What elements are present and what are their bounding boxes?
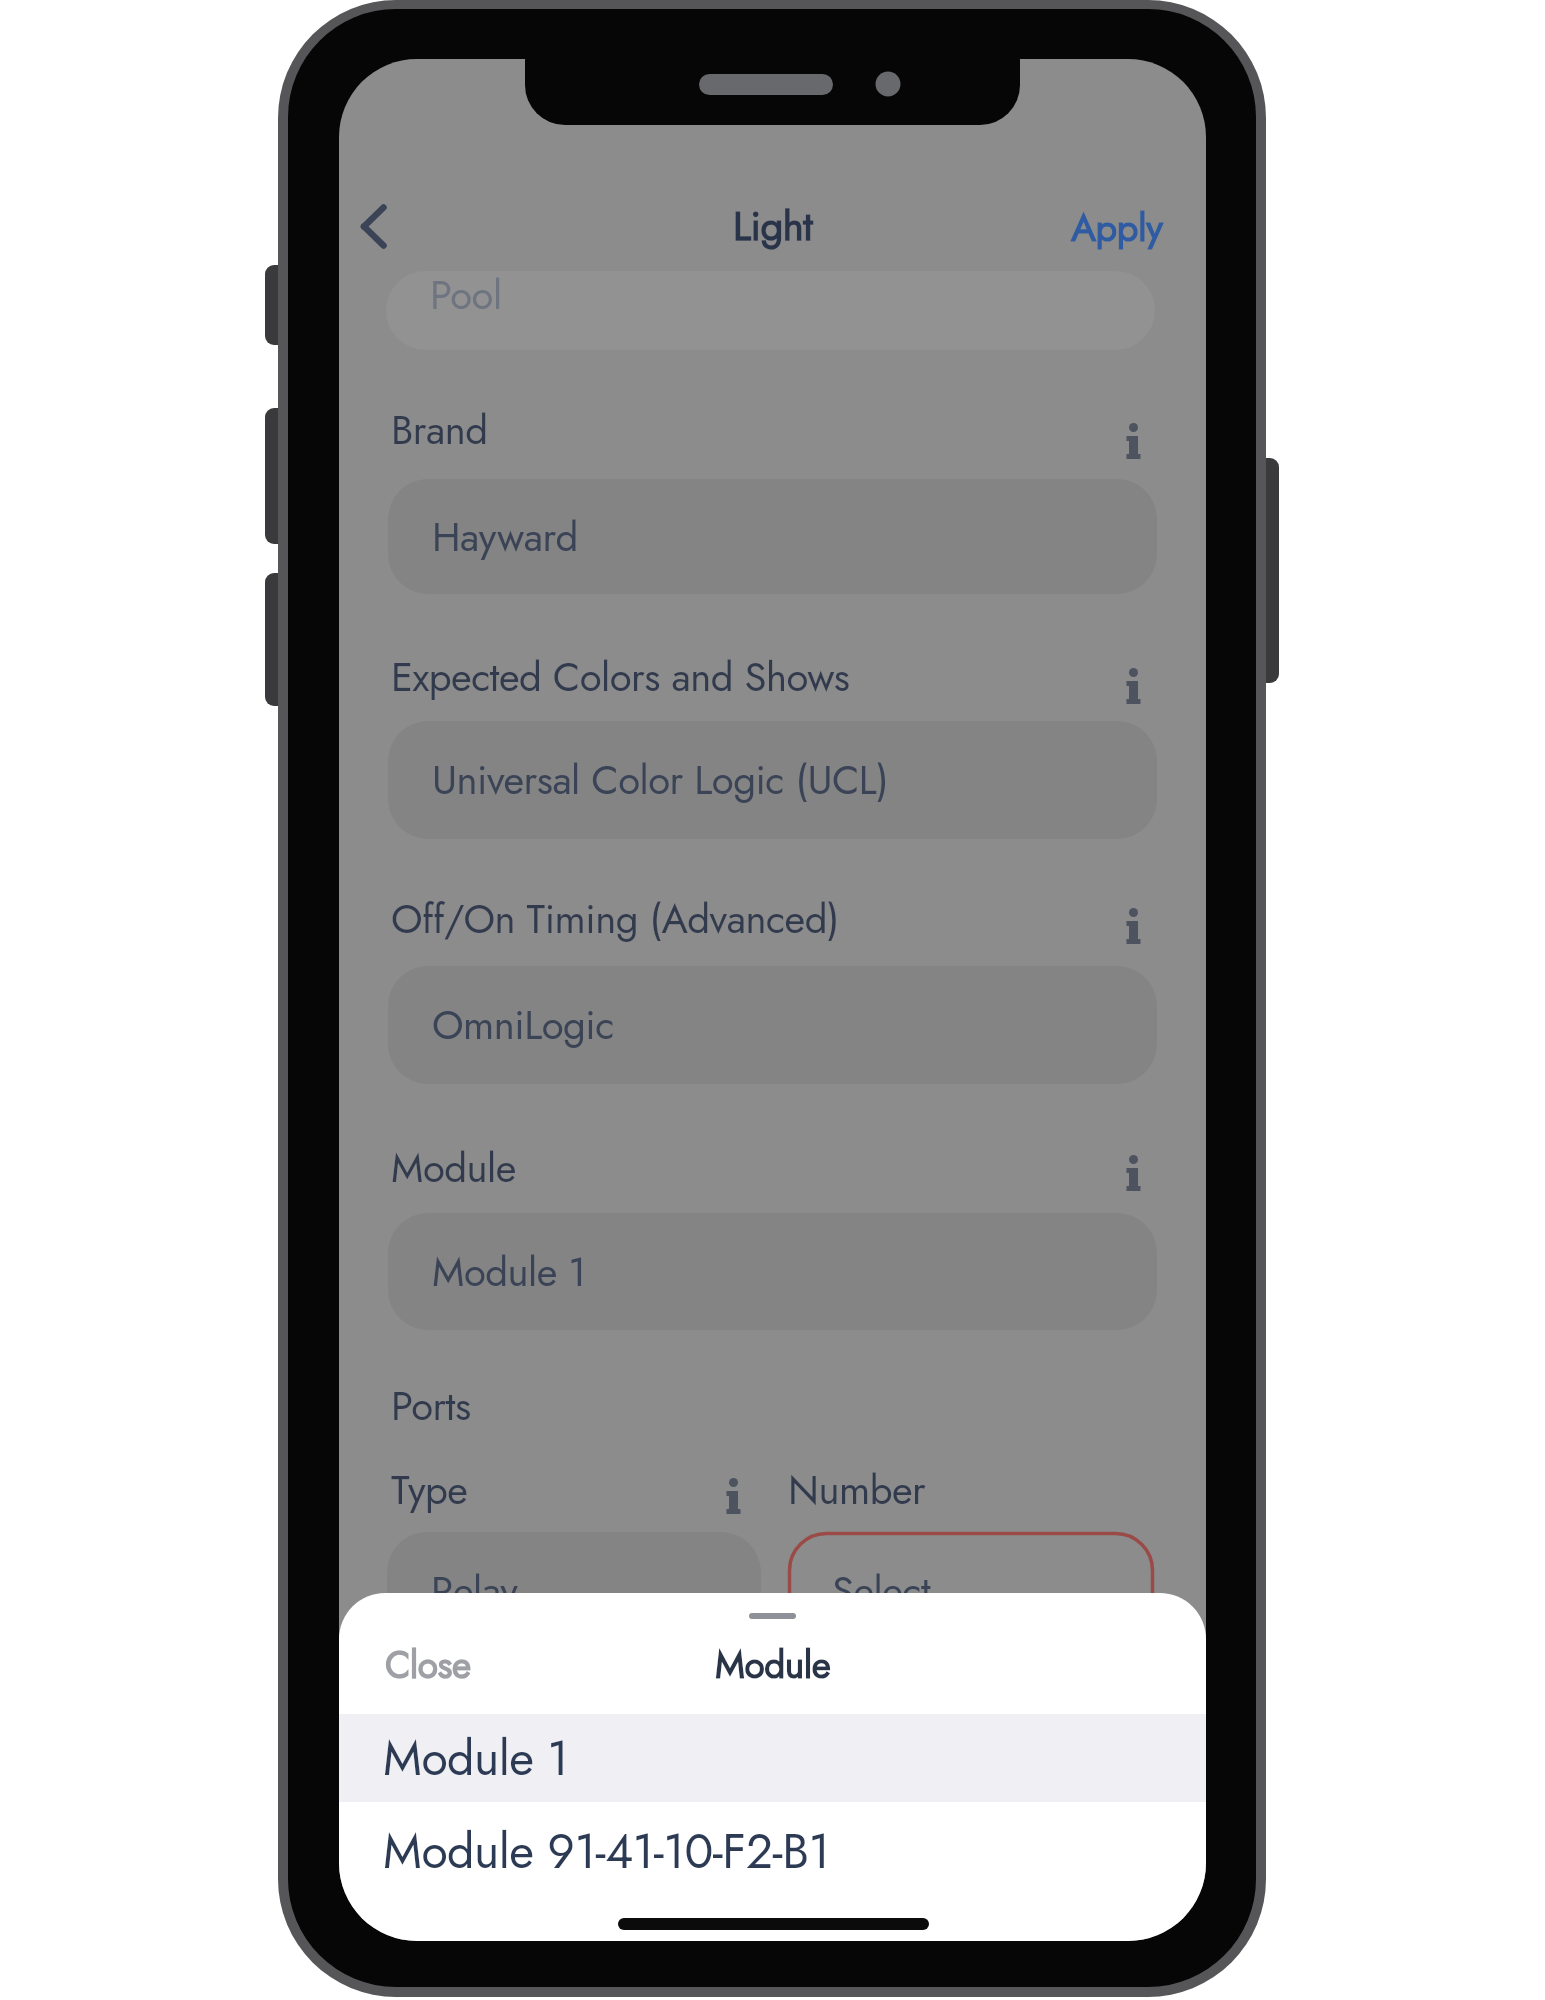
button[interactable]: Relay: [387, 1532, 761, 1650]
staticText: Hayward: [432, 508, 578, 566]
button[interactable]: Module 91-41-10-F2-B1: [339, 1802, 1206, 1900]
staticText: Universal Color Logic (UCL): [432, 751, 889, 809]
staticText: Apply: [1071, 200, 1163, 255]
staticText: Type: [391, 1461, 468, 1519]
staticText: Module: [715, 1638, 831, 1691]
staticText: Pool: [430, 266, 502, 324]
staticText: Module 91-41-10-F2-B1: [383, 1817, 830, 1886]
staticText: Close: [385, 1638, 471, 1691]
staticText: Module 1: [383, 1724, 569, 1793]
button[interactable]: Hayward: [388, 479, 1157, 594]
button[interactable]: Select: [788, 1532, 1154, 1650]
button[interactable]: Close: [385, 1636, 515, 1692]
button[interactable]: Module 1: [339, 1714, 1206, 1802]
staticText: Number: [788, 1461, 926, 1519]
staticText: Light: [733, 197, 813, 255]
button[interactable]: OmniLogic: [388, 966, 1157, 1084]
staticText: Off/On Timing (Advanced): [391, 890, 839, 948]
staticText: OmniLogic: [432, 996, 614, 1054]
staticText: Relay: [431, 1562, 518, 1620]
staticText: Expected Colors and Shows: [391, 648, 850, 706]
button[interactable]: Module 1: [388, 1213, 1157, 1330]
staticText: Ports: [391, 1377, 471, 1435]
button[interactable]: [347, 191, 399, 261]
button[interactable]: [386, 271, 1155, 350]
staticText: Select: [832, 1562, 931, 1620]
staticText: Module: [391, 1139, 516, 1197]
staticText: Module 1: [432, 1243, 586, 1301]
button[interactable]: Apply: [1047, 199, 1187, 255]
button[interactable]: Universal Color Logic (UCL): [388, 721, 1157, 839]
staticText: Brand: [391, 401, 488, 459]
